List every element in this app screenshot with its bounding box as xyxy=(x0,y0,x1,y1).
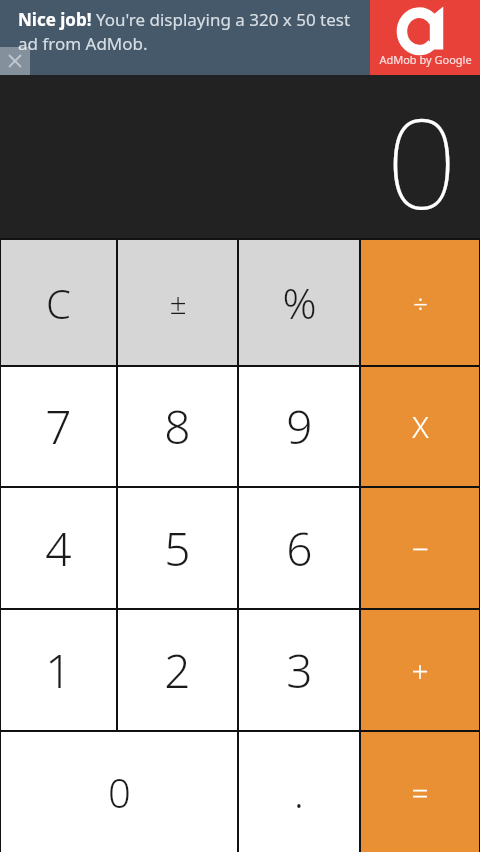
button[interactable]: 0 xyxy=(1,732,237,852)
button[interactable]: − xyxy=(361,488,479,608)
button[interactable]: ÷ xyxy=(361,240,479,365)
button[interactable]: 5 xyxy=(118,488,237,608)
staticText: 5 xyxy=(164,517,191,580)
button[interactable]: + xyxy=(361,610,479,730)
staticText: % xyxy=(282,274,317,331)
staticText: − xyxy=(411,528,429,569)
button[interactable]: AdMob by Google xyxy=(370,0,480,75)
staticText: 9 xyxy=(286,395,313,458)
staticText: ÷ xyxy=(413,285,428,320)
button[interactable]: 4 xyxy=(1,488,116,608)
button[interactable]: X xyxy=(361,367,479,486)
button[interactable]: Close ad xyxy=(0,47,30,75)
staticText: AdMob by Google xyxy=(379,52,472,67)
staticText: + xyxy=(411,650,429,691)
button[interactable]: % xyxy=(239,240,359,365)
staticText: Nice job! You're displaying a 320 x 50 t… xyxy=(18,8,360,55)
staticText: 1 xyxy=(45,639,72,702)
staticText: 0 xyxy=(386,75,458,232)
button[interactable]: 1 xyxy=(1,610,116,730)
staticText: X xyxy=(412,406,429,447)
staticText: . xyxy=(294,765,304,819)
button[interactable]: 6 xyxy=(239,488,359,608)
button[interactable]: ± xyxy=(118,240,237,365)
button[interactable]: . xyxy=(239,732,359,852)
button[interactable]: C xyxy=(1,240,116,365)
staticText: C xyxy=(46,276,71,330)
button[interactable]: = xyxy=(361,732,479,852)
button[interactable]: Nice job! You're displaying a 320 x 50 t… xyxy=(0,0,480,75)
staticText: 4 xyxy=(45,517,72,580)
staticText: 8 xyxy=(164,395,191,458)
button[interactable]: 9 xyxy=(239,367,359,486)
staticText: 7 xyxy=(45,395,72,458)
button[interactable]: 8 xyxy=(118,367,237,486)
staticText: 0 xyxy=(108,765,131,819)
staticText: 2 xyxy=(164,639,191,702)
button[interactable]: 2 xyxy=(118,610,237,730)
button[interactable]: 7 xyxy=(1,367,116,486)
button[interactable]: 3 xyxy=(239,610,359,730)
staticText: 6 xyxy=(286,517,313,580)
staticText: ± xyxy=(169,282,187,323)
staticText: 3 xyxy=(286,639,313,702)
staticText: = xyxy=(411,772,429,813)
